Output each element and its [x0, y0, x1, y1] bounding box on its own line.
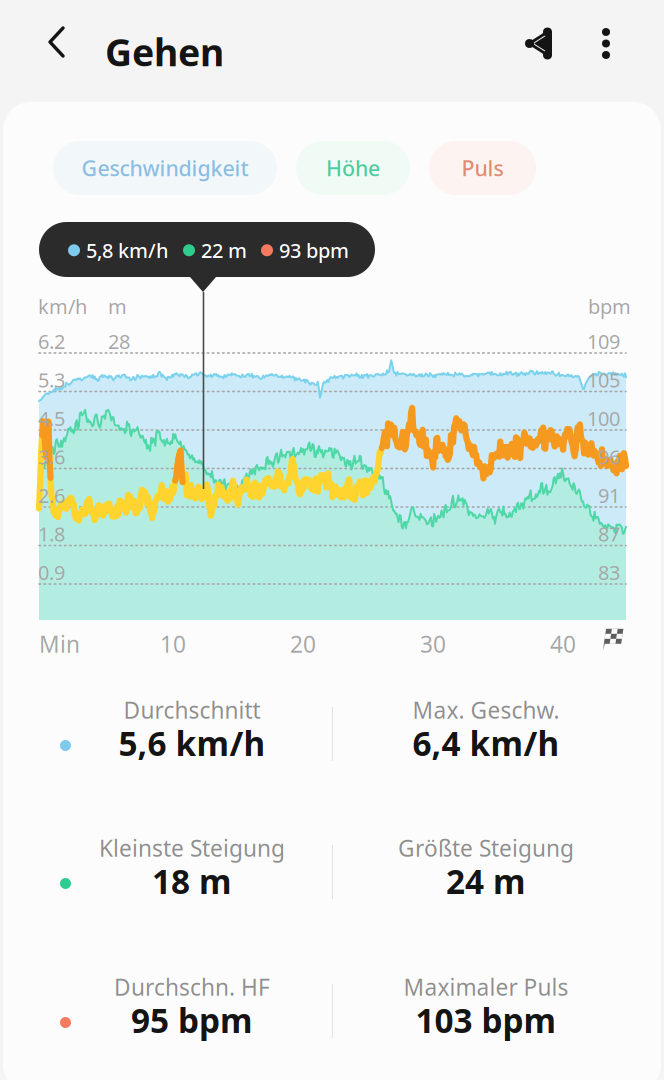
staticText: 83 — [598, 559, 620, 586]
staticText: Maximaler Puls — [403, 972, 568, 1002]
staticText: 105 — [587, 366, 620, 393]
staticText: 28 — [108, 328, 130, 355]
staticText: 24 m — [446, 859, 526, 903]
staticText: Größte Steigung — [398, 833, 574, 863]
staticText: 2.6 — [38, 482, 65, 509]
staticText: 30 — [420, 629, 446, 659]
staticText: 20 — [290, 629, 316, 659]
staticText: 5.3 — [38, 366, 65, 393]
button[interactable]: Geschwindigkeit — [53, 141, 277, 195]
button[interactable]: Share — [503, 10, 575, 78]
staticText: Min — [39, 629, 80, 659]
staticText: km/h — [38, 293, 87, 320]
staticText: 3.6 — [38, 443, 65, 470]
staticText: 109 — [587, 328, 620, 355]
staticText: Gehen — [105, 27, 224, 77]
staticText: Durchschn. HF — [114, 972, 270, 1002]
staticText: 0.9 — [38, 559, 65, 586]
staticText: 93 bpm — [279, 237, 349, 264]
staticText: 18 m — [152, 859, 232, 903]
staticText: Geschwindigkeit — [81, 154, 248, 182]
staticText: 103 bpm — [415, 998, 556, 1042]
staticText: 6,4 km/h — [412, 721, 559, 765]
staticText: 5,6 km/h — [118, 721, 265, 765]
staticText: Kleinste Steigung — [99, 833, 285, 863]
staticText: 5,8 km/h — [86, 237, 169, 264]
staticText: 1.8 — [38, 520, 65, 547]
staticText: 96 — [598, 443, 620, 470]
staticText: Durchschnitt — [123, 695, 260, 725]
button[interactable]: Höhe — [296, 141, 410, 195]
staticText: 40 — [550, 629, 576, 659]
staticText: 100 — [587, 405, 620, 432]
staticText: 6.2 — [38, 328, 65, 355]
button[interactable]: Back — [25, 9, 89, 76]
staticText: 91 — [598, 482, 620, 509]
button[interactable]: Puls — [429, 141, 536, 195]
staticText: 10 — [160, 629, 186, 659]
staticText: bpm — [588, 293, 631, 320]
staticText: 95 bpm — [131, 998, 253, 1042]
button[interactable]: More options — [574, 10, 638, 77]
staticText: Max. Geschw. — [412, 695, 559, 725]
staticText: 87 — [598, 520, 620, 547]
staticText: Höhe — [326, 154, 380, 182]
staticText: 4.5 — [38, 405, 65, 432]
staticText: m — [108, 293, 127, 320]
staticText: 22 m — [201, 237, 247, 264]
staticText: Puls — [461, 154, 503, 182]
